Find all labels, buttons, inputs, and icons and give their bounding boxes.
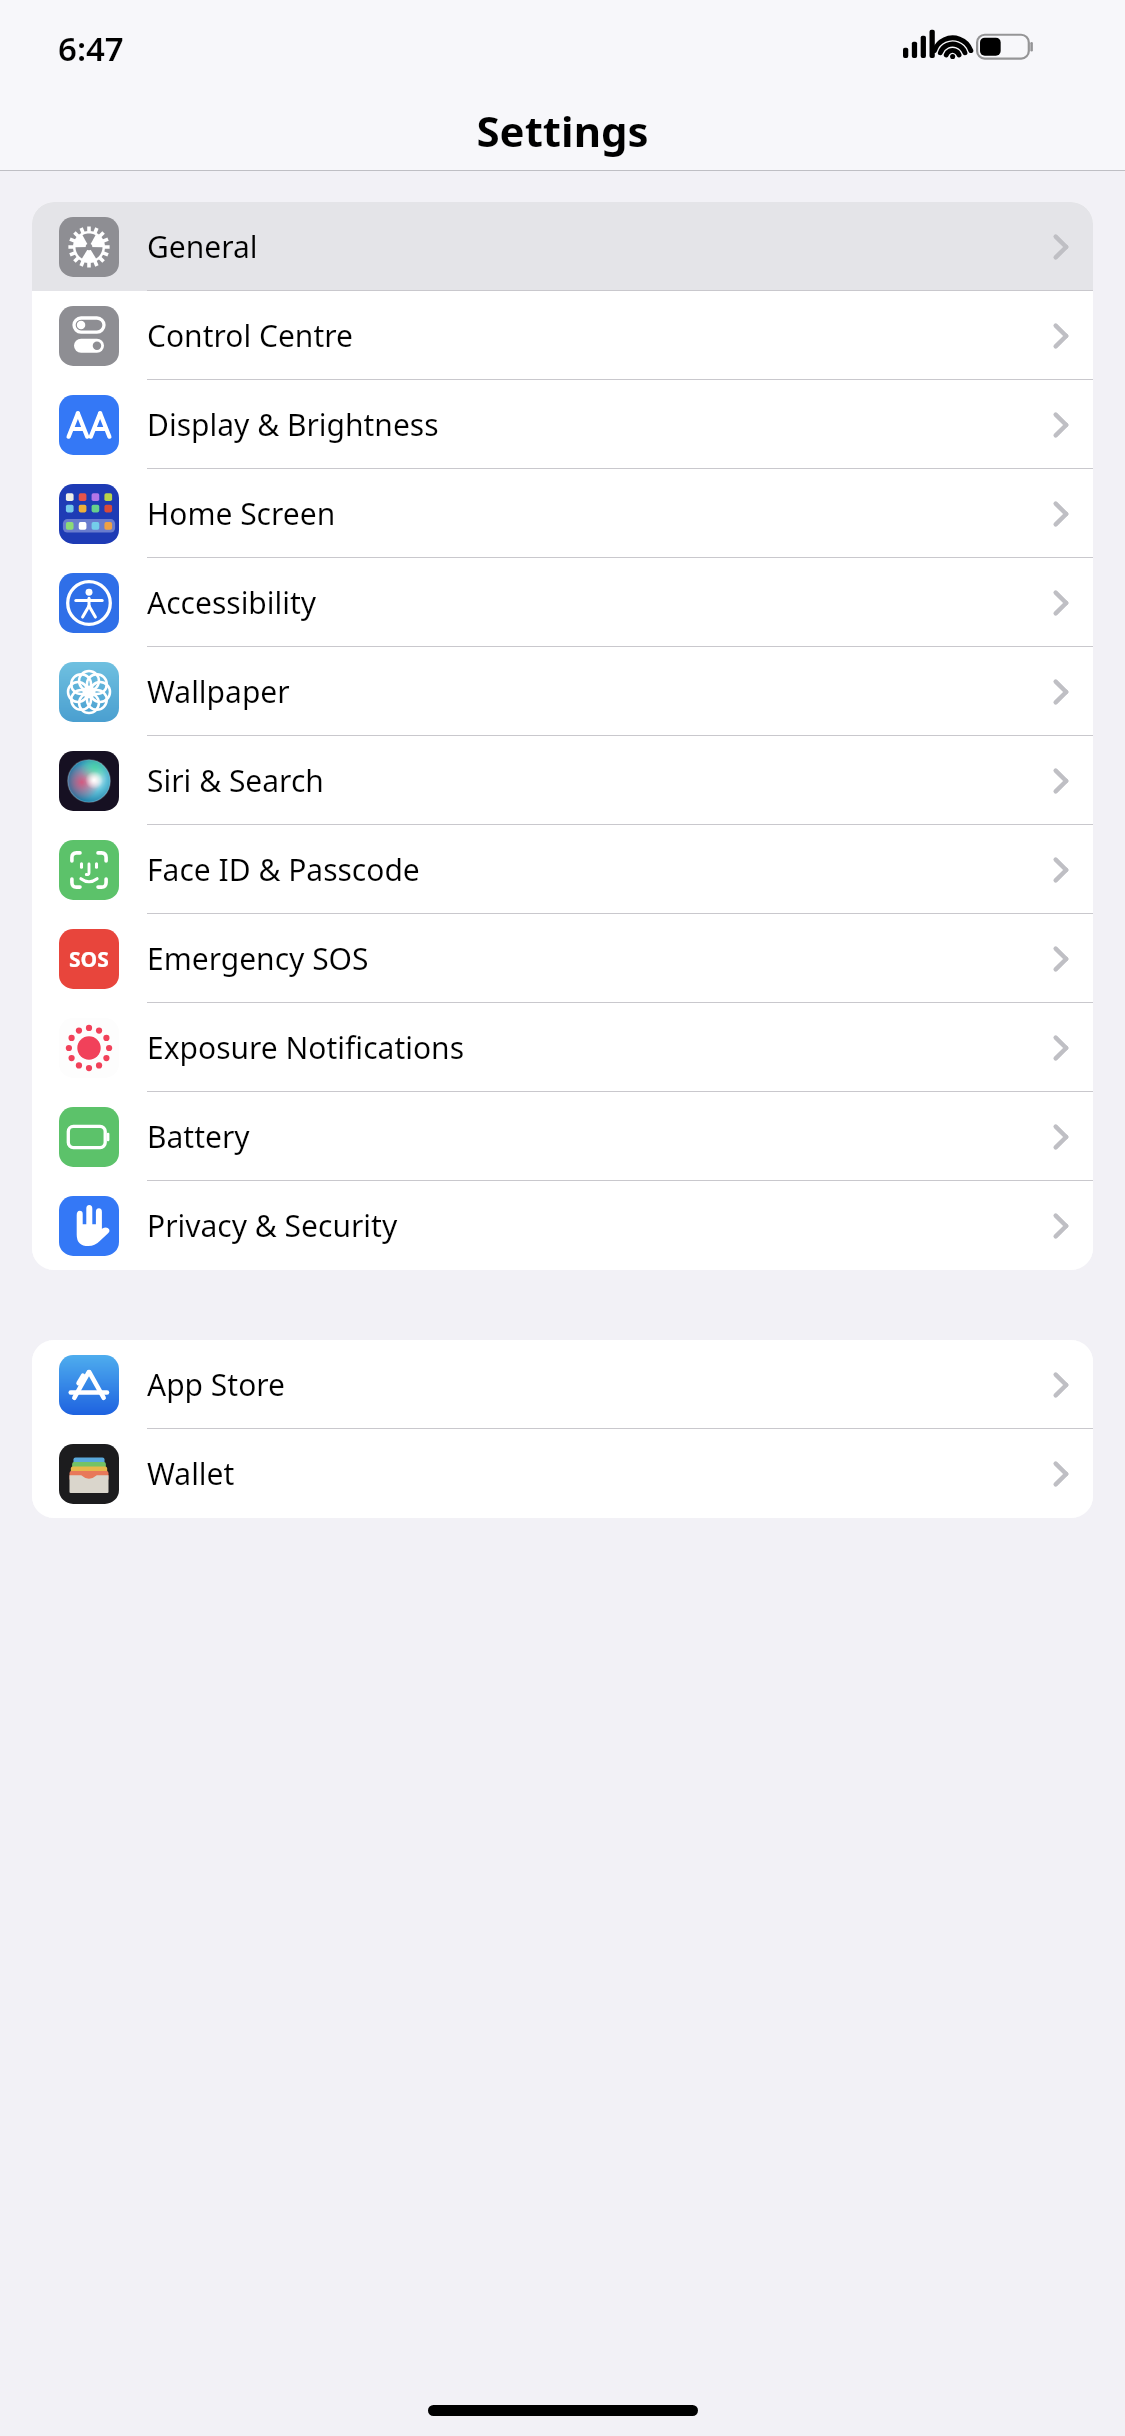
staticText: Control Centre [147, 315, 1053, 356]
staticText: Emergency SOS [147, 938, 1053, 979]
button[interactable]: Siri & Search [32, 736, 1093, 825]
button[interactable]: Exposure Notifications [32, 1003, 1093, 1092]
staticText: App Store [147, 1364, 1053, 1405]
staticText: Display & Brightness [147, 404, 1053, 445]
staticText: Wallet [147, 1453, 1053, 1494]
button[interactable]: Emergency SOS [32, 914, 1093, 1003]
staticText: General [147, 226, 1053, 267]
button[interactable]: Display & Brightness [32, 380, 1093, 469]
staticText: Wallpaper [147, 671, 1053, 712]
button[interactable]: General [32, 202, 1093, 291]
button[interactable]: Privacy & Security [32, 1181, 1093, 1270]
button[interactable]: Battery [32, 1092, 1093, 1181]
staticText: Battery [147, 1116, 1053, 1157]
button[interactable]: Wallpaper [32, 647, 1093, 736]
staticText: Exposure Notifications [147, 1027, 1053, 1068]
staticText: SOS [69, 945, 109, 974]
staticText: 6:47 [58, 26, 124, 71]
staticText: Siri & Search [147, 760, 1053, 801]
button[interactable]: Home Screen [32, 469, 1093, 558]
button[interactable]: Control Centre [32, 291, 1093, 380]
button[interactable]: Face ID & Passcode [32, 825, 1093, 914]
staticText: Privacy & Security [147, 1205, 1053, 1246]
staticText: Accessibility [147, 582, 1053, 623]
button[interactable]: App Store [32, 1340, 1093, 1429]
button[interactable]: Accessibility [32, 558, 1093, 647]
staticText: Home Screen [147, 493, 1053, 534]
staticText: Face ID & Passcode [147, 849, 1053, 890]
button[interactable]: Wallet [32, 1429, 1093, 1518]
staticText: Settings [476, 102, 649, 159]
